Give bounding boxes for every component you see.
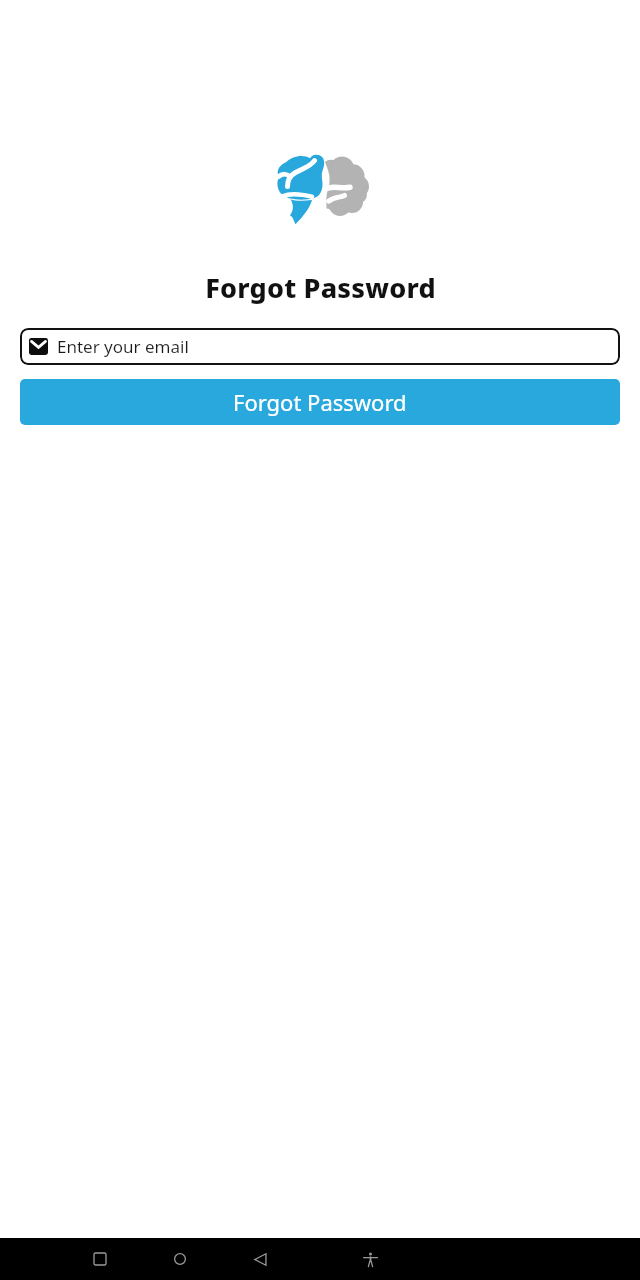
- button[interactable]: Accessibility: [340, 1238, 400, 1280]
- staticText: Forgot Password: [205, 269, 436, 306]
- button[interactable]: Home: [140, 1238, 220, 1280]
- button[interactable]: Enter your email: [20, 328, 620, 365]
- button[interactable]: Recent apps: [60, 1238, 140, 1280]
- button[interactable]: Back: [220, 1238, 300, 1280]
- staticText: Forgot Password: [233, 387, 407, 417]
- button[interactable]: Forgot Password: [20, 379, 620, 425]
- staticText: Enter your email: [57, 335, 189, 358]
